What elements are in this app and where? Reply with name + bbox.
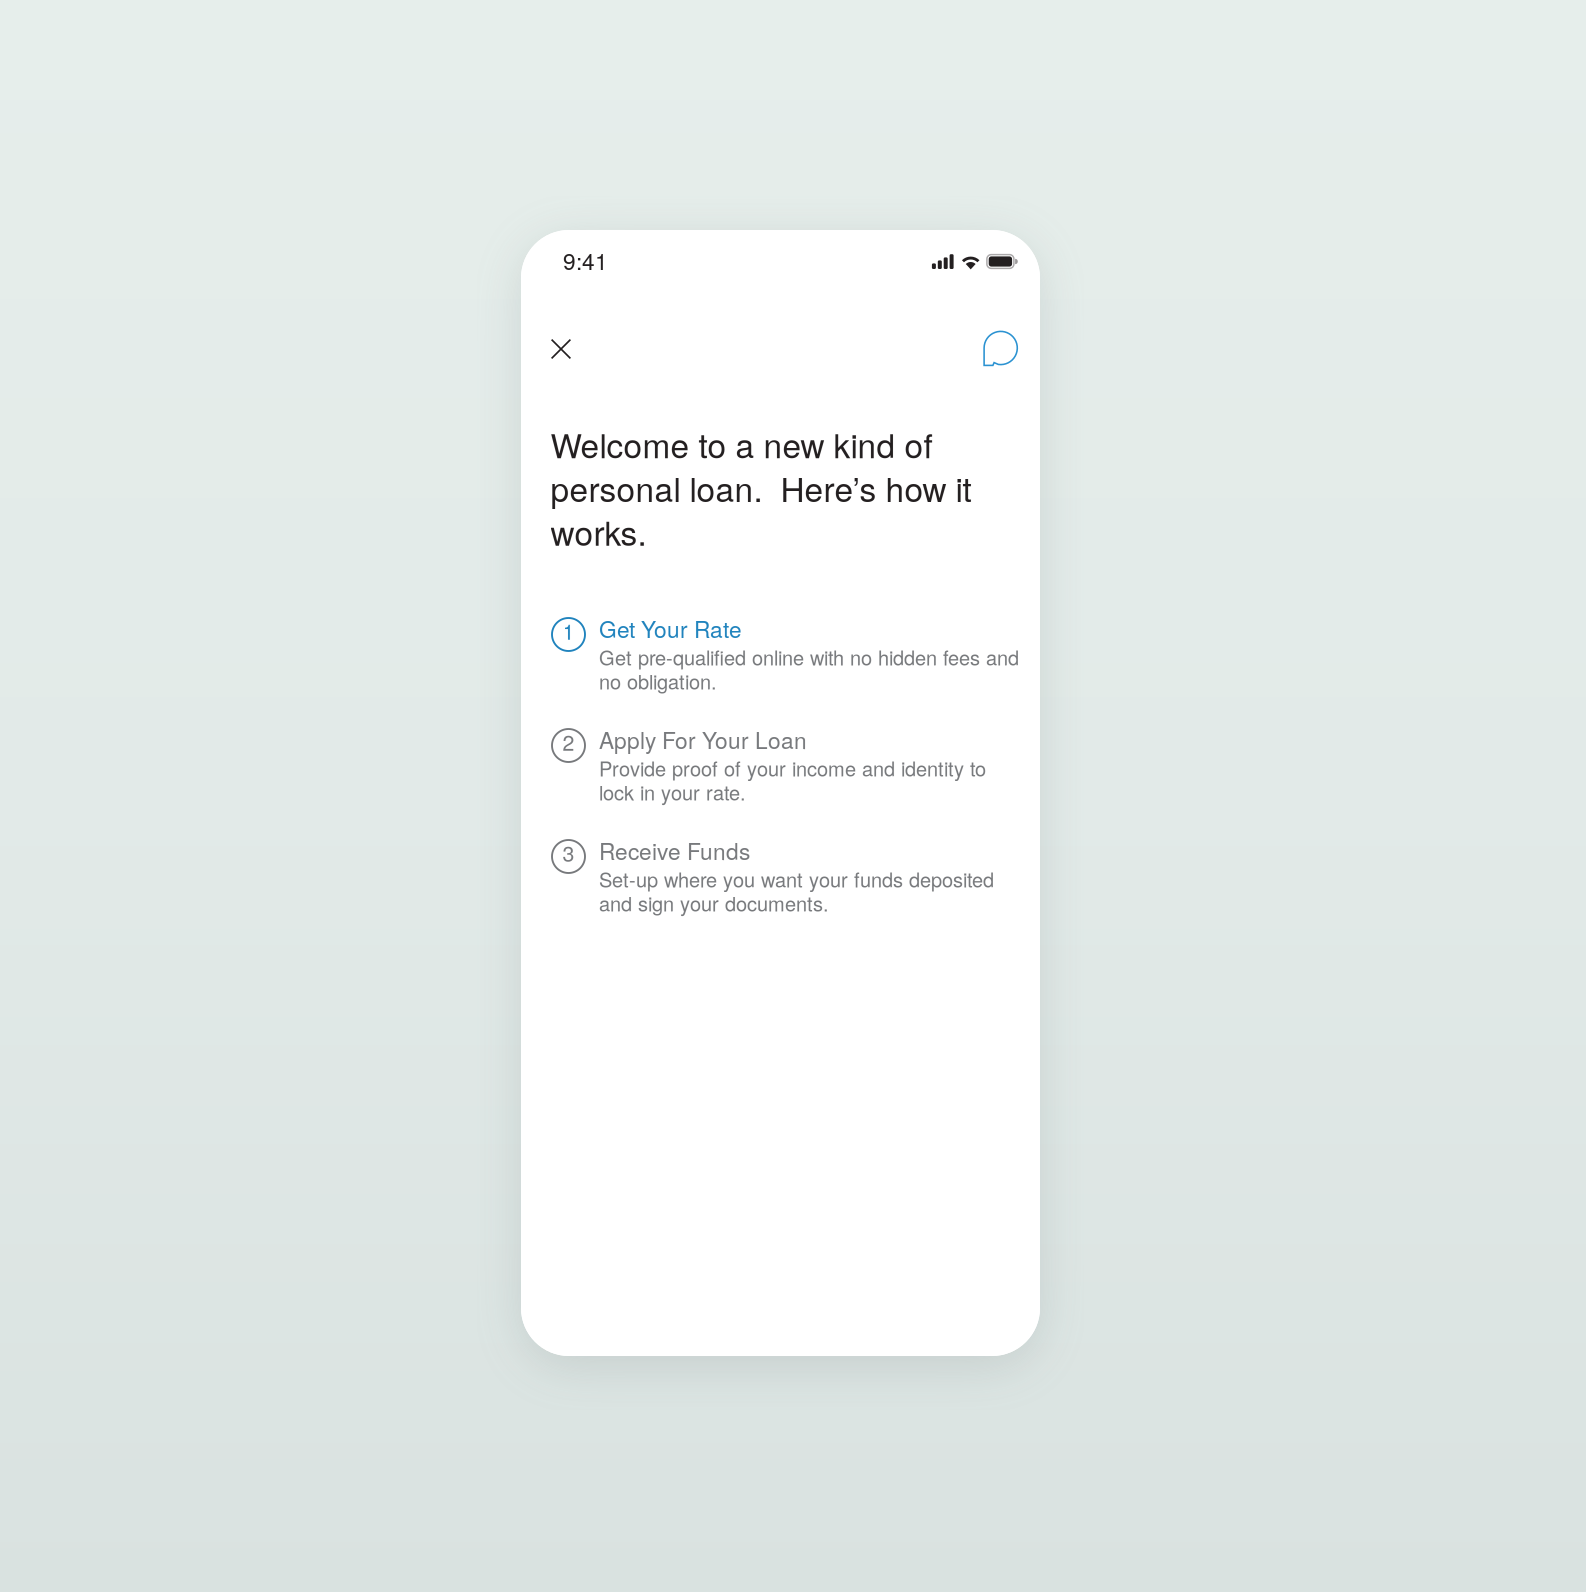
button[interactable]: Chat support xyxy=(973,325,1028,373)
staticText: Provide proof of your income and identit… xyxy=(599,753,986,806)
button[interactable]: Close xyxy=(528,325,594,373)
staticText: 1 xyxy=(562,615,574,646)
staticText: Welcome to a new kind of personal loan. … xyxy=(550,420,971,555)
button[interactable]: 3 xyxy=(552,839,1029,917)
staticText: 2 xyxy=(562,726,574,757)
staticText: 9:41 xyxy=(563,244,608,276)
staticText: 3 xyxy=(562,837,574,868)
staticText: Apply For Your Loan xyxy=(599,723,807,755)
button[interactable]: 1 xyxy=(552,617,1029,695)
staticText: Set-up where you want your funds deposit… xyxy=(599,864,994,917)
staticText: Receive Funds xyxy=(599,834,750,866)
staticText: Get pre-qualified online with no hidden … xyxy=(599,642,1019,695)
staticText: Get Your Rate xyxy=(599,612,742,644)
button[interactable]: 2 xyxy=(552,728,1029,806)
